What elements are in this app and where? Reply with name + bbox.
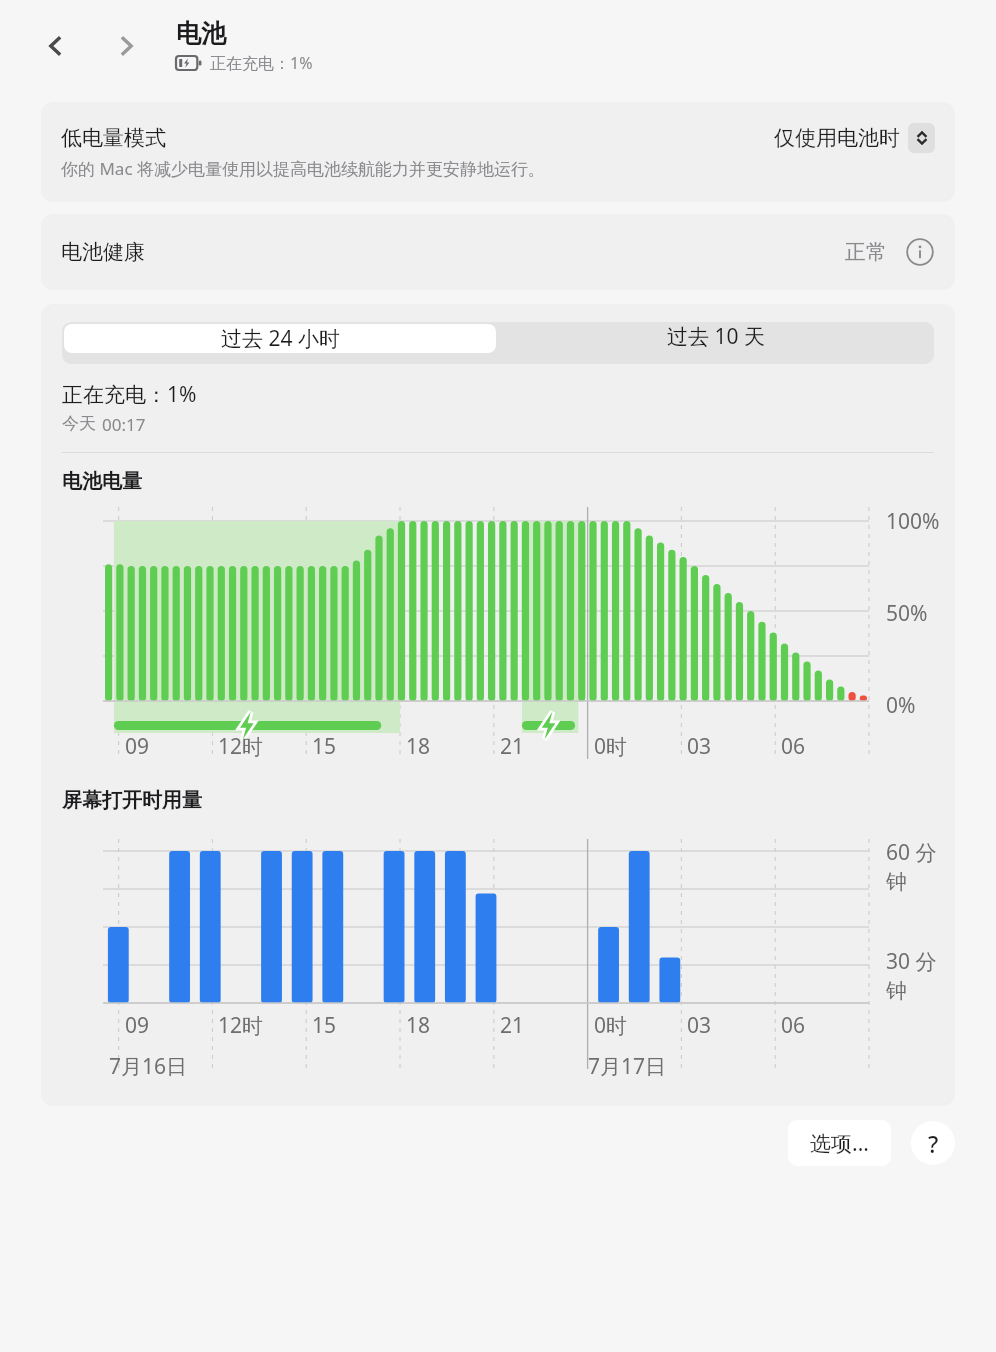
staticText: 你的 Mac 将减少电量使用以提高电池续航能力并更安静地运行。 [61, 157, 545, 180]
staticText: 正常 [845, 239, 887, 265]
staticText: 09 [125, 732, 150, 761]
staticText: 21 [500, 1011, 525, 1040]
staticText: 仅使用电池时 [774, 125, 900, 151]
staticText: 50% [886, 599, 928, 628]
staticText: 选项... [810, 1129, 869, 1158]
button[interactable]: Back [34, 24, 78, 68]
button[interactable]: 过去 10 天 [498, 322, 934, 351]
staticText: 03 [687, 1011, 712, 1040]
staticText: 00:17 [102, 413, 146, 436]
staticText: 30 分钟 [886, 947, 955, 1004]
staticText: 正在充电：1% [210, 52, 313, 74]
button[interactable]: 电池健康 [41, 214, 955, 290]
staticText: 低电量模式 [61, 125, 166, 151]
staticText: 21 [500, 732, 525, 761]
staticText: ? [928, 1128, 939, 1159]
staticText: 电池电量 [62, 469, 142, 494]
button[interactable]: Battery health info [905, 237, 935, 267]
staticText: 电池 [176, 18, 226, 49]
button[interactable]: 选项... [788, 1120, 891, 1166]
staticText: 今天 [62, 413, 96, 434]
staticText: 屏幕打开时用量 [62, 788, 202, 813]
staticText: 7月17日 [588, 1052, 667, 1081]
staticText: 12时 [218, 1011, 264, 1040]
button[interactable]: Forward [104, 24, 148, 68]
staticText: 0时 [594, 732, 628, 761]
staticText: 18 [406, 1011, 431, 1040]
staticText: 0% [886, 691, 916, 720]
staticText: 0时 [594, 1011, 628, 1040]
button[interactable]: Help [911, 1121, 955, 1165]
staticText: 06 [781, 732, 806, 761]
staticText: 18 [406, 732, 431, 761]
staticText: 过去 10 天 [667, 322, 765, 351]
staticText: 12时 [218, 732, 264, 761]
staticText: 60 分钟 [886, 838, 955, 895]
staticText: 03 [687, 732, 712, 761]
button[interactable]: 低电量模式 [41, 102, 955, 202]
button[interactable]: 过去 24 小时 [64, 324, 496, 353]
staticText: 7月16日 [109, 1052, 188, 1081]
staticText: 正在充电：1% [62, 380, 197, 409]
staticText: 过去 24 小时 [221, 324, 340, 353]
staticText: 电池健康 [61, 239, 145, 265]
staticText: 06 [781, 1011, 806, 1040]
button[interactable]: 仅使用电池时 [774, 123, 935, 153]
staticText: 09 [125, 1011, 150, 1040]
staticText: 15 [312, 1011, 337, 1040]
staticText: 15 [312, 732, 337, 761]
staticText: 100% [886, 507, 940, 536]
